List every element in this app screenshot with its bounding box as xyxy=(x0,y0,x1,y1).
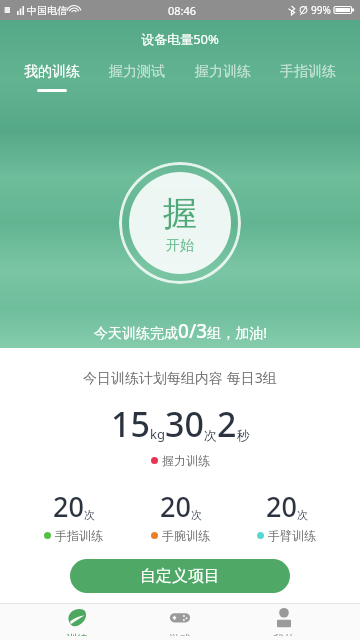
staticText: kg xyxy=(150,425,165,443)
button[interactable]: 握力训练 xyxy=(189,61,257,94)
button[interactable]: 游戏 xyxy=(153,603,207,640)
button[interactable]: 自定义项目 xyxy=(70,559,290,593)
staticText: 99% xyxy=(311,3,331,17)
staticText: 手指训练 xyxy=(280,63,336,81)
staticText: 15 xyxy=(111,401,150,447)
staticText: 我的 xyxy=(273,632,295,636)
button[interactable]: 我的训练 xyxy=(18,61,86,94)
button[interactable]: 20 xyxy=(40,488,107,543)
staticText: 我的训练 xyxy=(24,63,80,81)
staticText: 次 xyxy=(204,427,217,443)
staticText: 设备电量50% xyxy=(141,30,219,48)
staticText: 游戏 xyxy=(169,632,191,636)
button[interactable]: 握力测试 xyxy=(103,61,171,94)
staticText: 握力训练 xyxy=(195,63,251,81)
staticText: 自定义项目 xyxy=(140,566,220,586)
staticText: 训练 xyxy=(66,632,88,636)
staticText: 2 xyxy=(217,401,237,447)
staticText: 30 xyxy=(165,401,204,447)
staticText: 开始 xyxy=(166,237,194,255)
staticText: 握 xyxy=(163,192,197,235)
button[interactable]: 训练 xyxy=(50,603,104,640)
button[interactable]: 20 xyxy=(147,488,214,543)
staticText: 次 xyxy=(297,508,308,522)
staticText: 手臂训练 xyxy=(268,528,316,543)
staticText: 手腕训练 xyxy=(162,528,210,543)
staticText: 次 xyxy=(191,508,202,522)
staticText: 握力测试 xyxy=(109,63,165,81)
staticText: 中国电信 xyxy=(27,4,67,17)
staticText: 握力训练 xyxy=(162,453,210,468)
button[interactable]: 我的 xyxy=(257,603,311,640)
button[interactable]: 20 xyxy=(253,488,320,543)
staticText: 今日训练计划每组内容 每日3组 xyxy=(83,368,277,387)
staticText: 次 xyxy=(84,508,95,522)
staticText: 今天训练完成0/3组，加油! xyxy=(94,318,267,344)
staticText: 手指训练 xyxy=(55,528,103,543)
staticText: 20 xyxy=(160,488,191,525)
staticText: 秒 xyxy=(237,427,250,443)
staticText: 20 xyxy=(266,488,297,525)
staticText: 08:46 xyxy=(168,3,197,18)
button[interactable]: 握 xyxy=(119,162,241,284)
staticText: 20 xyxy=(53,488,84,525)
button[interactable]: 手指训练 xyxy=(274,61,342,94)
